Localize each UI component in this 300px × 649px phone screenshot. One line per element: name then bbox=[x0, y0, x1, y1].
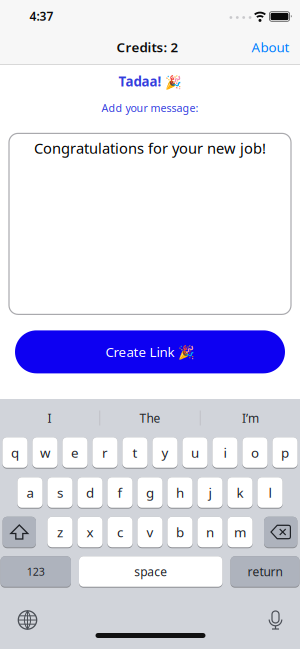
button[interactable]: l bbox=[257, 477, 283, 509]
staticText: m bbox=[234, 523, 246, 541]
button[interactable]: n bbox=[197, 517, 223, 548]
staticText: a bbox=[26, 484, 33, 501]
button[interactable]: q bbox=[2, 437, 28, 469]
button[interactable]: v bbox=[137, 517, 163, 548]
button[interactable]: Shift bbox=[3, 517, 36, 548]
button[interactable]: t bbox=[122, 437, 148, 469]
button[interactable]: About bbox=[251, 38, 289, 56]
staticText: i bbox=[223, 444, 226, 461]
button[interactable]: o bbox=[242, 437, 268, 469]
button[interactable]: Delete bbox=[264, 517, 297, 548]
button[interactable]: Numbers bbox=[0, 556, 71, 588]
button[interactable]: p bbox=[272, 437, 298, 469]
staticText: x bbox=[86, 523, 93, 541]
button[interactable]: I bbox=[0, 399, 99, 437]
staticText: 4:37 bbox=[29, 8, 53, 24]
button[interactable]: The bbox=[100, 399, 200, 437]
button[interactable]: a bbox=[17, 477, 43, 509]
staticText: o bbox=[251, 444, 259, 461]
staticText: d bbox=[86, 484, 94, 501]
button[interactable]: Message bbox=[9, 133, 291, 314]
staticText: 123 bbox=[27, 564, 45, 579]
staticText: The bbox=[139, 410, 160, 426]
button[interactable]: Next keyboard bbox=[17, 610, 37, 630]
button[interactable]: Dictate bbox=[268, 610, 282, 631]
staticText: s bbox=[57, 484, 63, 501]
staticText: u bbox=[191, 444, 199, 461]
button[interactable]: y bbox=[152, 437, 178, 469]
staticText: Congratulations for your new job! bbox=[34, 138, 266, 158]
button[interactable]: x bbox=[77, 517, 103, 548]
staticText: b bbox=[176, 523, 184, 541]
button[interactable]: h bbox=[167, 477, 193, 509]
button[interactable]: u bbox=[182, 437, 208, 469]
staticText: Tadaa! 🎉 bbox=[118, 72, 181, 90]
button[interactable]: k bbox=[227, 477, 253, 509]
button[interactable]: s bbox=[47, 477, 73, 509]
button[interactable]: z bbox=[47, 517, 73, 548]
staticText: c bbox=[117, 523, 123, 541]
staticText: h bbox=[176, 484, 184, 501]
button[interactable]: I’m bbox=[201, 399, 300, 437]
staticText: Credits: 2 bbox=[116, 38, 178, 56]
staticText: f bbox=[117, 484, 122, 501]
staticText: return bbox=[247, 563, 282, 579]
staticText: v bbox=[146, 523, 153, 541]
button[interactable]: Return bbox=[230, 556, 299, 588]
button[interactable]: g bbox=[137, 477, 163, 509]
button[interactable]: f bbox=[107, 477, 133, 509]
staticText: I’m bbox=[242, 410, 259, 426]
button[interactable]: m bbox=[227, 517, 253, 548]
staticText: Create Link 🎉 bbox=[105, 343, 194, 361]
staticText: q bbox=[11, 444, 19, 461]
staticText: t bbox=[132, 444, 137, 461]
staticText: g bbox=[146, 484, 154, 501]
staticText: z bbox=[57, 523, 63, 541]
button[interactable]: Create Link 🎉 bbox=[15, 330, 285, 373]
staticText: Add your message: bbox=[101, 101, 198, 115]
staticText: space bbox=[134, 563, 167, 579]
staticText: j bbox=[208, 484, 211, 501]
button[interactable]: j bbox=[197, 477, 223, 509]
staticText: About bbox=[251, 38, 289, 56]
staticText: w bbox=[40, 444, 50, 461]
button[interactable]: r bbox=[92, 437, 118, 469]
staticText: r bbox=[102, 444, 108, 461]
staticText: e bbox=[71, 444, 79, 461]
staticText: n bbox=[206, 523, 214, 541]
staticText: k bbox=[236, 484, 243, 501]
staticText: y bbox=[161, 444, 168, 461]
button[interactable]: w bbox=[32, 437, 58, 469]
staticText: p bbox=[281, 444, 289, 461]
button[interactable]: c bbox=[107, 517, 133, 548]
staticText: l bbox=[268, 484, 271, 501]
button[interactable]: e bbox=[62, 437, 88, 469]
staticText: I bbox=[47, 410, 51, 426]
button[interactable]: Space bbox=[79, 556, 222, 588]
button[interactable]: i bbox=[212, 437, 238, 469]
button[interactable]: b bbox=[167, 517, 193, 548]
button[interactable]: d bbox=[77, 477, 103, 509]
